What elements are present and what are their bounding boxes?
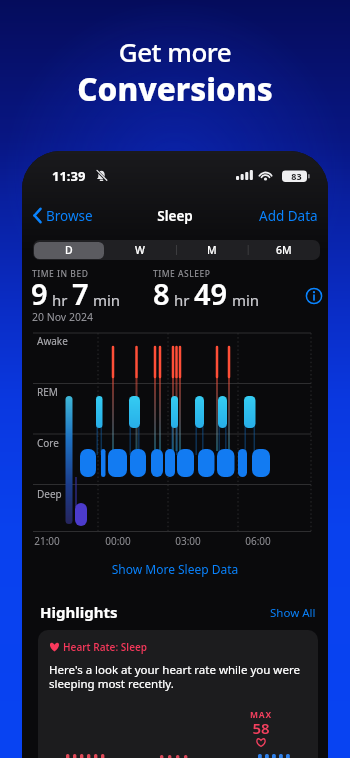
button[interactable] bbox=[33, 208, 42, 223]
staticText: Highlights bbox=[40, 602, 118, 622]
staticText: 20 Nov 2024 bbox=[32, 310, 93, 324]
staticText: 9 bbox=[31, 274, 48, 313]
staticText: Deep bbox=[37, 487, 62, 501]
staticText: Here's a look at your heart rate while y… bbox=[49, 662, 300, 692]
staticText: 7 bbox=[72, 274, 89, 313]
staticText: 58 bbox=[243, 718, 279, 738]
staticText: 00:00 bbox=[100, 534, 136, 548]
button[interactable]: Show All bbox=[270, 605, 316, 621]
staticText: M bbox=[207, 243, 217, 257]
staticText: hr bbox=[170, 290, 194, 310]
button[interactable]: M bbox=[176, 240, 248, 260]
button[interactable]: W bbox=[104, 240, 176, 260]
button[interactable]: Add Data bbox=[259, 207, 318, 225]
button[interactable]: 6M bbox=[248, 240, 320, 260]
staticText: TIME IN BED bbox=[32, 268, 89, 280]
staticText: 03:00 bbox=[170, 534, 206, 548]
staticText: Get more bbox=[0, 34, 350, 69]
staticText: 49 bbox=[194, 274, 228, 313]
staticText: hr bbox=[48, 290, 72, 310]
staticText: 06:00 bbox=[240, 534, 276, 548]
staticText: 6M bbox=[276, 243, 292, 257]
staticText: 11:39 bbox=[52, 167, 86, 185]
staticText: D bbox=[65, 243, 73, 257]
staticText: min bbox=[228, 290, 260, 310]
staticText: Conversions bbox=[0, 67, 350, 110]
staticText: 83 bbox=[287, 170, 306, 182]
staticText: W bbox=[135, 243, 145, 257]
button[interactable]: Heart Rate: Sleep bbox=[38, 630, 318, 758]
staticText: Heart Rate: Sleep bbox=[63, 640, 148, 654]
staticText: TIME ASLEEP bbox=[153, 268, 211, 280]
staticText: Core bbox=[37, 436, 59, 450]
staticText: 8 bbox=[153, 274, 170, 313]
staticText: MAX bbox=[243, 709, 279, 721]
button[interactable]: D bbox=[33, 240, 104, 260]
button[interactable]: Browse bbox=[46, 207, 93, 225]
staticText: 21:00 bbox=[29, 534, 65, 548]
staticText: Sleep bbox=[22, 207, 328, 225]
staticText: Awake bbox=[37, 334, 68, 348]
button[interactable]: Show More Sleep Data bbox=[22, 561, 328, 577]
staticText: min bbox=[89, 290, 121, 310]
staticText: REM bbox=[37, 385, 58, 399]
button[interactable] bbox=[305, 287, 323, 305]
